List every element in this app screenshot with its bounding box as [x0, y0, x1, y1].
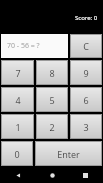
staticText: 70 - 56 = ?: [7, 41, 40, 51]
button[interactable]: 0: [1, 141, 33, 166]
button[interactable]: 8: [36, 60, 68, 85]
staticText: 1: [15, 121, 21, 133]
staticText: Score: 0: [75, 14, 98, 22]
staticText: 9: [83, 67, 89, 79]
staticText: Enter: [57, 148, 80, 160]
button[interactable]: 5: [36, 87, 68, 112]
staticText: 4: [15, 94, 21, 106]
staticText: 7: [15, 67, 21, 79]
staticText: 6: [83, 94, 89, 106]
button[interactable]: 7: [1, 60, 34, 85]
button[interactable]: 70 - 56 = ?: [1, 34, 68, 58]
button[interactable]: 3: [70, 114, 102, 139]
button[interactable]: 4: [1, 87, 34, 112]
button[interactable]: Enter: [35, 141, 102, 166]
button[interactable]: 2: [36, 114, 68, 139]
staticText: 5: [49, 94, 55, 106]
staticText: C: [83, 40, 89, 52]
button[interactable]: Home: [37, 168, 67, 183]
staticText: 8: [49, 67, 55, 79]
staticText: 3: [83, 121, 89, 133]
staticText: 0: [14, 148, 20, 160]
button[interactable]: Back: [3, 168, 33, 183]
button[interactable]: 1: [1, 114, 34, 139]
button[interactable]: Recent apps: [70, 168, 100, 183]
button[interactable]: 6: [70, 87, 102, 112]
button[interactable]: 9: [70, 60, 102, 85]
staticText: 2: [49, 121, 55, 133]
button[interactable]: Clear: [70, 34, 102, 58]
